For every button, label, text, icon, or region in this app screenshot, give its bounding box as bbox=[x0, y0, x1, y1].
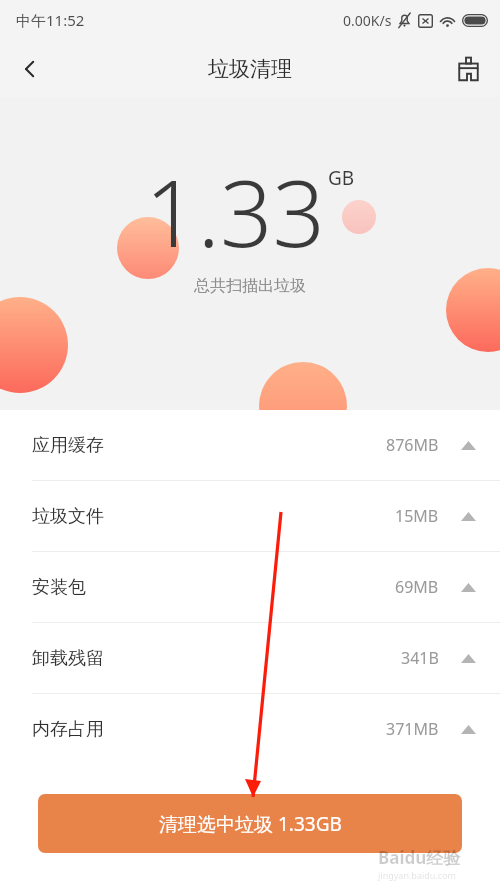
staticText: 876MB bbox=[386, 434, 439, 456]
staticText: 69MB bbox=[395, 576, 439, 598]
staticText: 总共扫描出垃圾 bbox=[194, 276, 306, 296]
button[interactable]: 应用缓存 bbox=[0, 410, 500, 480]
staticText: 应用缓存 bbox=[32, 434, 104, 457]
button[interactable]: 清理选中垃圾 1.33GB bbox=[38, 794, 462, 853]
staticText: GB bbox=[328, 165, 355, 191]
staticText: 垃圾文件 bbox=[32, 505, 104, 528]
button[interactable]: Back bbox=[6, 45, 54, 93]
staticText: 安装包 bbox=[32, 576, 86, 599]
button[interactable]: 垃圾文件 bbox=[0, 481, 500, 551]
button[interactable]: 卸载残留 bbox=[0, 623, 500, 693]
staticText: jingyan.baidu.com bbox=[378, 869, 456, 881]
button[interactable]: Clean settings bbox=[444, 45, 492, 93]
staticText: 371MB bbox=[386, 718, 439, 740]
staticText: 1.33 bbox=[145, 149, 326, 274]
staticText: Baidu经验 bbox=[378, 846, 461, 869]
staticText: 15MB bbox=[395, 505, 439, 527]
staticText: 内存占用 bbox=[32, 718, 104, 741]
button[interactable]: 安装包 bbox=[0, 552, 500, 622]
staticText: 0.00K/s bbox=[343, 11, 392, 30]
staticText: 中午11:52 bbox=[16, 10, 85, 30]
button[interactable]: 内存占用 bbox=[0, 694, 500, 764]
staticText: 卸载残留 bbox=[32, 647, 104, 670]
staticText: 341B bbox=[401, 647, 439, 669]
staticText: 垃圾清理 bbox=[208, 56, 292, 82]
staticText: 清理选中垃圾 1.33GB bbox=[159, 811, 342, 837]
